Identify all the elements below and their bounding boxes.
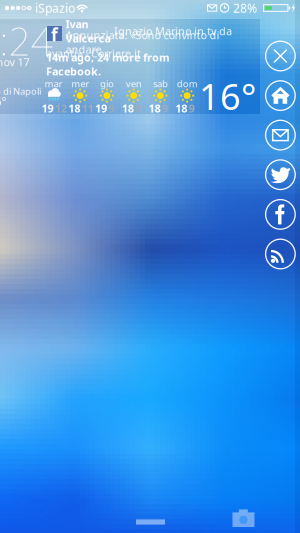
- staticText: 9: [162, 101, 168, 115]
- staticText: mar: [44, 77, 62, 90]
- staticText: 19: [41, 101, 53, 115]
- staticText: 11: [82, 101, 94, 115]
- staticText: 16°: [0, 93, 6, 109]
- staticText: Annunziata: «Sono convinto di andare: [65, 28, 219, 56]
- staticText: avanti» - Corriere.it: [46, 46, 141, 60]
- staticText: 18: [122, 101, 134, 115]
- button[interactable]: Mail: [265, 120, 295, 150]
- button[interactable]: Facebook: [265, 199, 295, 229]
- staticText: Torre del Greco di Napoli: [0, 85, 41, 97]
- staticText: nov 17: [0, 55, 29, 69]
- staticText: 18: [68, 101, 80, 115]
- staticText: 16°: [199, 72, 256, 120]
- staticText: Ignazio Marino in tv da: [114, 24, 232, 38]
- staticText: 18: [148, 101, 160, 115]
- button[interactable]: Torre del Greco di Napoli: [0, 0, 300, 533]
- staticText: 19: [95, 101, 107, 115]
- staticText: 18: [175, 101, 187, 115]
- staticText: 9: [135, 101, 141, 115]
- staticText: 12: [55, 101, 67, 115]
- staticText: 14m ago, 24 more from Facebook.: [46, 50, 169, 78]
- staticText: mer: [71, 77, 89, 90]
- staticText: iSpazio: [35, 0, 75, 16]
- staticText: 9: [108, 101, 114, 115]
- staticText: f: [51, 23, 58, 46]
- button[interactable]: Camera: [0, 0, 300, 533]
- button[interactable]: Twitter: [265, 160, 295, 190]
- staticText: Ivan Valcerca: [65, 17, 110, 45]
- staticText: sab: [153, 77, 168, 90]
- staticText: dom: [177, 77, 198, 90]
- button[interactable]: f: [0, 0, 300, 533]
- staticText: 28%: [233, 0, 257, 16]
- button[interactable]: Home: [265, 81, 295, 111]
- button[interactable]: RSS feed: [265, 239, 295, 269]
- button[interactable]: Close: [265, 41, 295, 71]
- staticText: :24: [0, 15, 52, 66]
- button[interactable]: Slide to unlock: [0, 0, 300, 533]
- staticText: 9: [189, 101, 195, 115]
- staticText: ven: [126, 77, 142, 90]
- staticText: gio: [100, 77, 114, 90]
